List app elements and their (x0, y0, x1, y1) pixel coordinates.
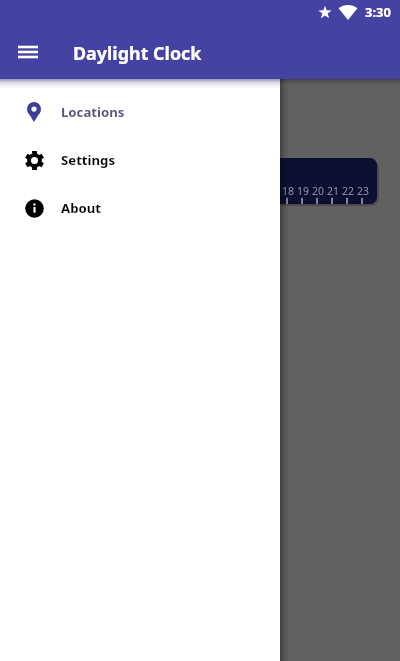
staticText: 18 (282, 184, 294, 198)
button[interactable]: About (0, 184, 280, 232)
button[interactable]: Settings (0, 136, 280, 184)
button[interactable]: Open navigation drawer (0, 24, 56, 79)
staticText: 21 (327, 184, 339, 198)
staticText: Locations (61, 103, 125, 121)
staticText: Settings (61, 151, 116, 169)
staticText: 20 (312, 184, 324, 198)
staticText: 19 (297, 184, 309, 198)
staticText: About (61, 199, 101, 217)
staticText: 3:30 (365, 3, 391, 21)
staticText: Daylight Clock (73, 41, 202, 65)
button[interactable]: Locations (0, 88, 280, 136)
staticText: 22 (342, 184, 354, 198)
staticText: 23 (357, 184, 369, 198)
